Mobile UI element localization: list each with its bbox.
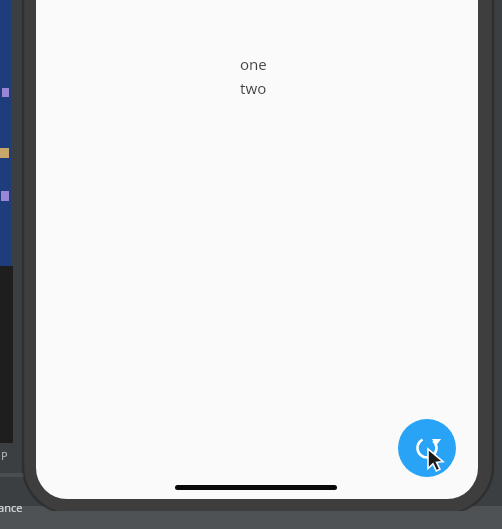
staticText: ance — [0, 500, 23, 515]
button[interactable] — [175, 485, 337, 490]
button[interactable]: Refresh — [398, 419, 456, 477]
staticText: two — [240, 78, 267, 98]
staticText: P — [1, 448, 8, 463]
staticText: one — [240, 54, 267, 74]
